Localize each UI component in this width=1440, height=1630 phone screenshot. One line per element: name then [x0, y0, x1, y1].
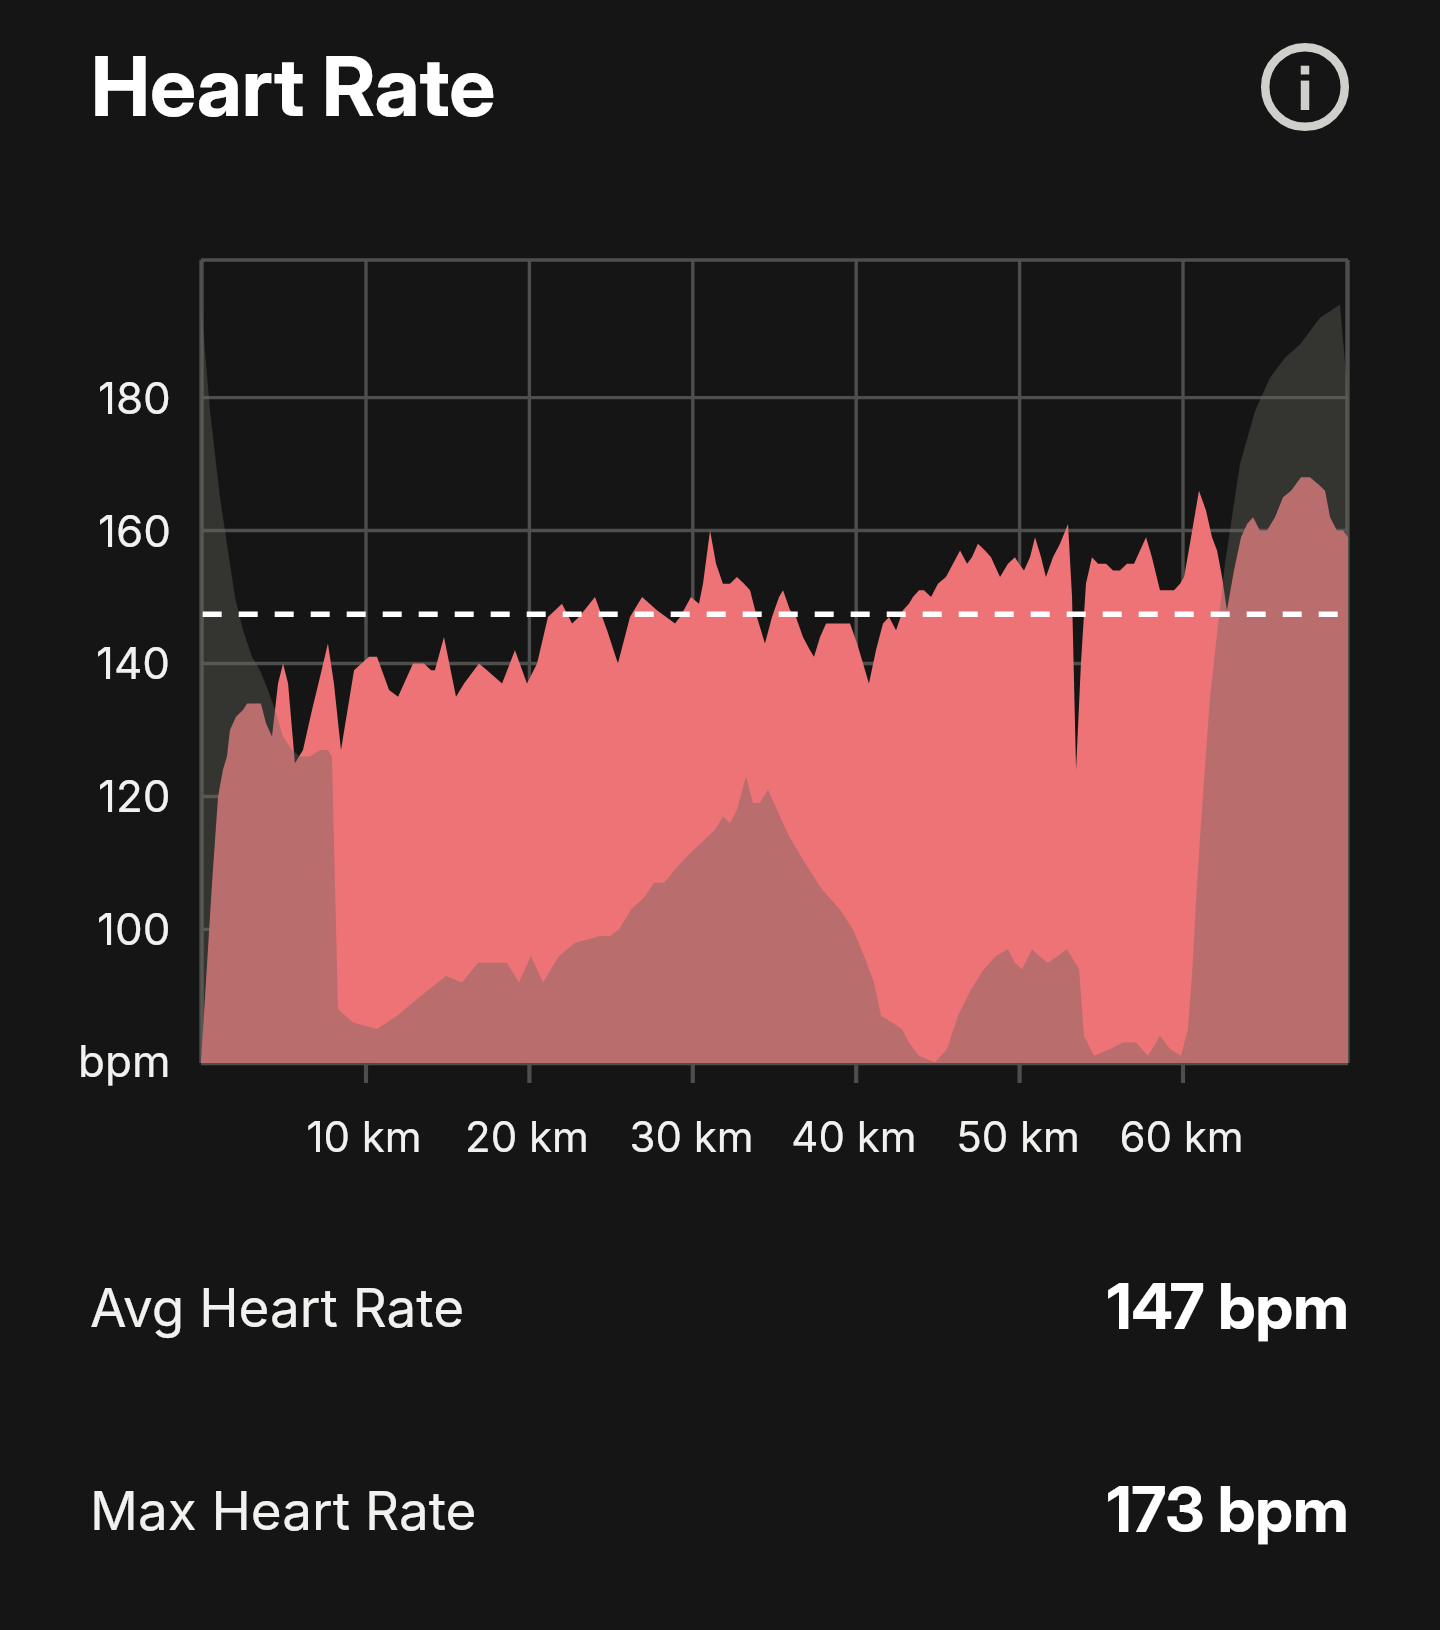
- staticText: 20 km: [465, 1111, 589, 1162]
- staticText: 180: [98, 371, 171, 424]
- staticText: Heart Rate: [91, 37, 496, 136]
- staticText: 147 bpm: [1107, 1268, 1349, 1344]
- staticText: 173 bpm: [1107, 1471, 1349, 1547]
- staticText: 160: [98, 504, 171, 557]
- staticText: 60 km: [1119, 1111, 1244, 1162]
- button[interactable]: Information: [1250, 32, 1360, 142]
- staticText: 10 km: [306, 1111, 422, 1162]
- staticText: Max Heart Rate: [90, 1479, 477, 1543]
- staticText: Avg Heart Rate: [90, 1276, 465, 1340]
- staticText: 40 km: [791, 1111, 917, 1162]
- staticText: 50 km: [956, 1111, 1080, 1162]
- staticText: 120: [98, 769, 171, 822]
- staticText: 140: [96, 636, 171, 689]
- button[interactable]: Max Heart Rate: [0, 1459, 1440, 1571]
- button[interactable]: Avg Heart Rate: [0, 1256, 1440, 1368]
- staticText: bpm: [78, 1034, 171, 1087]
- staticText: 30 km: [629, 1111, 754, 1162]
- staticText: 100: [97, 902, 171, 955]
